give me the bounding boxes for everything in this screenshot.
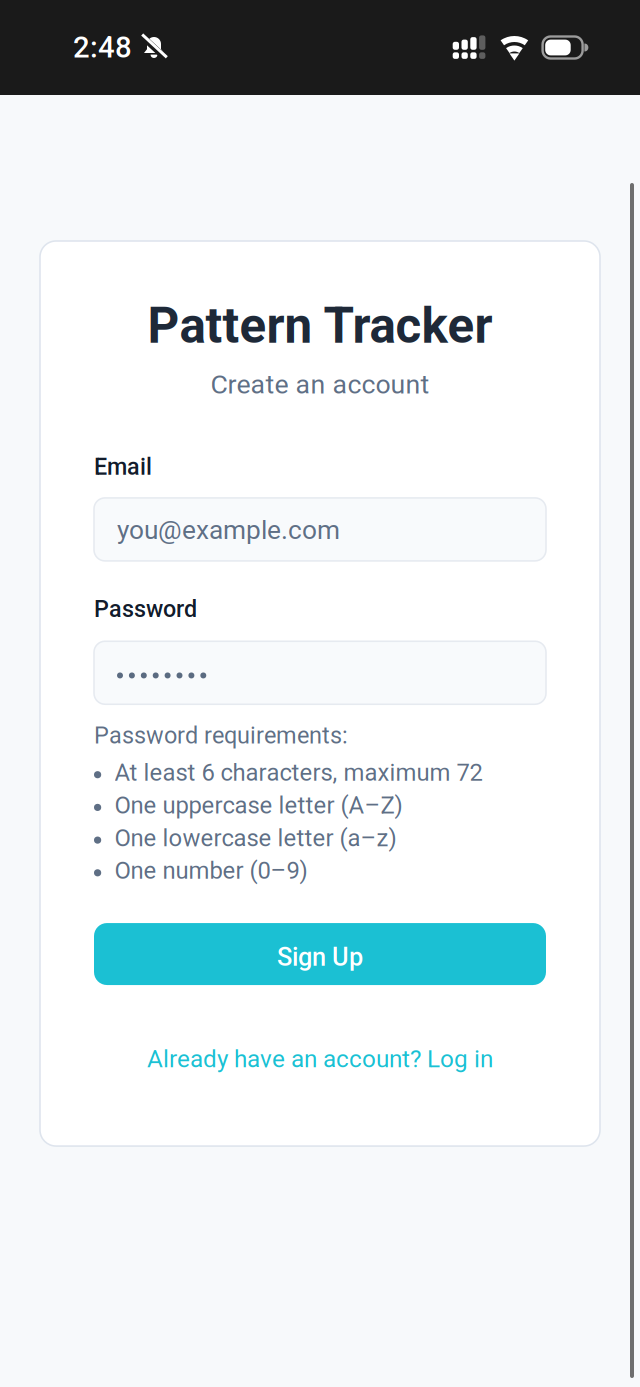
staticText: Already have an account? Log in [147, 1045, 493, 1073]
staticText: Email [94, 453, 152, 480]
staticText: Sign Up [277, 942, 363, 972]
staticText: Create an account [210, 369, 429, 400]
staticText: One number (0–9) [114, 857, 307, 885]
button[interactable]: Sign Up [94, 923, 546, 985]
staticText: 2:48 [73, 30, 132, 65]
button[interactable]: Already have an account? Log in [94, 1036, 546, 1082]
staticText: At least 6 characters, maximum 72 [114, 759, 482, 787]
staticText: One uppercase letter (A–Z) [114, 791, 402, 819]
staticText: Password requirements: [94, 722, 348, 749]
staticText: you@example.com [117, 514, 340, 545]
staticText: One lowercase letter (a–z) [114, 824, 396, 852]
staticText: Pattern Tracker [147, 297, 492, 355]
staticText: Password [94, 595, 197, 623]
